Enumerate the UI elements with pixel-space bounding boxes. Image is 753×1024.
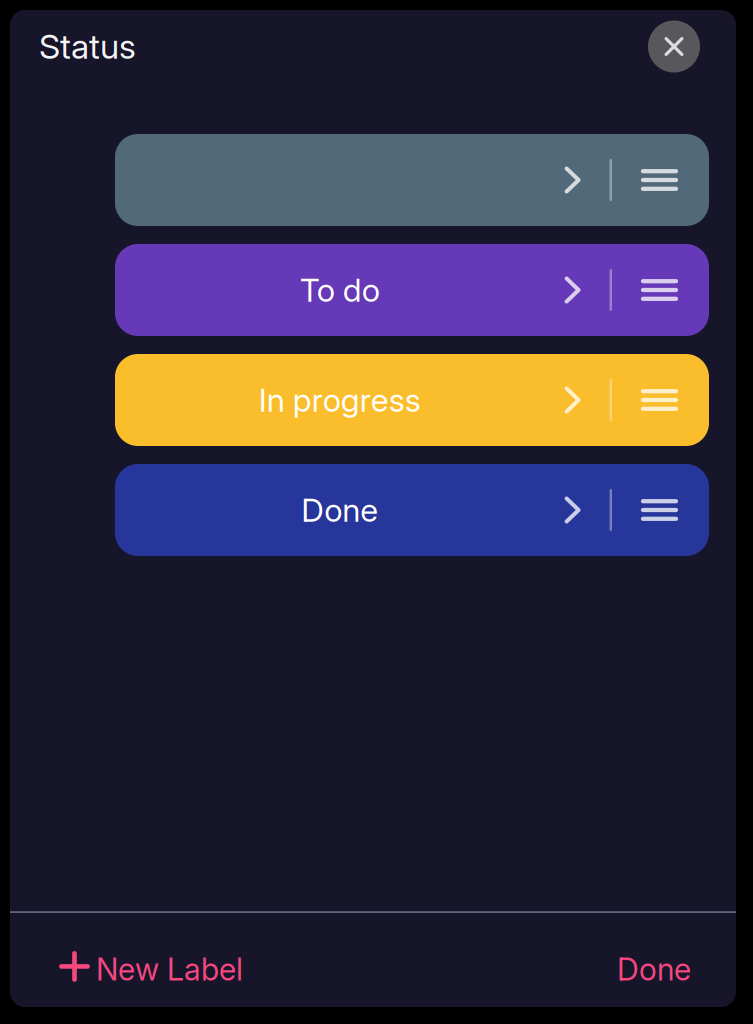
staticText: Done	[617, 951, 691, 988]
staticText: Done	[301, 491, 378, 529]
staticText: To do	[300, 271, 380, 309]
button[interactable]: In progress	[115, 354, 709, 446]
staticText: Status	[39, 26, 136, 67]
button[interactable]: Done	[115, 464, 709, 556]
button[interactable]: Close	[648, 20, 700, 72]
staticText: New Label	[96, 951, 243, 988]
button[interactable]: Done	[617, 951, 691, 988]
button[interactable]: Untitled label	[115, 134, 709, 226]
staticText: In progress	[259, 381, 421, 419]
button[interactable]: New Label	[59, 951, 243, 988]
button[interactable]: To do	[115, 244, 709, 336]
